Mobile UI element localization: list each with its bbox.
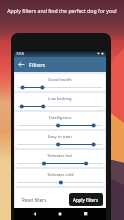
button[interactable]: Easy to train [15,131,105,148]
staticText: Easy to train [48,134,72,140]
button[interactable]: Tolerates hot [15,150,105,167]
button[interactable]: Reset filters [17,193,51,206]
staticText: Reset filters [22,197,47,203]
button[interactable]: Recents [81,209,91,219]
button[interactable]: Back [14,57,29,72]
staticText: Tolerates hot [47,153,73,159]
staticText: Tolerates cold [47,172,74,178]
button[interactable]: Intelligence [15,112,105,129]
staticText: Apply filters and find the perfect dog f… [0,7,124,14]
button[interactable]: Good health [15,74,105,91]
button[interactable]: Back [30,209,40,219]
staticText: Apply filters [73,197,99,203]
button[interactable]: Apply filters [69,193,103,206]
button[interactable]: Tolerates cold [15,169,105,186]
staticText: Intelligence [49,115,72,121]
staticText: Low barking [48,96,72,102]
staticText: Filters [29,61,46,68]
staticText: Good health [48,77,72,83]
button[interactable]: Home [55,209,65,219]
staticText: 7:55 [16,51,24,56]
button[interactable]: Low barking [15,93,105,110]
